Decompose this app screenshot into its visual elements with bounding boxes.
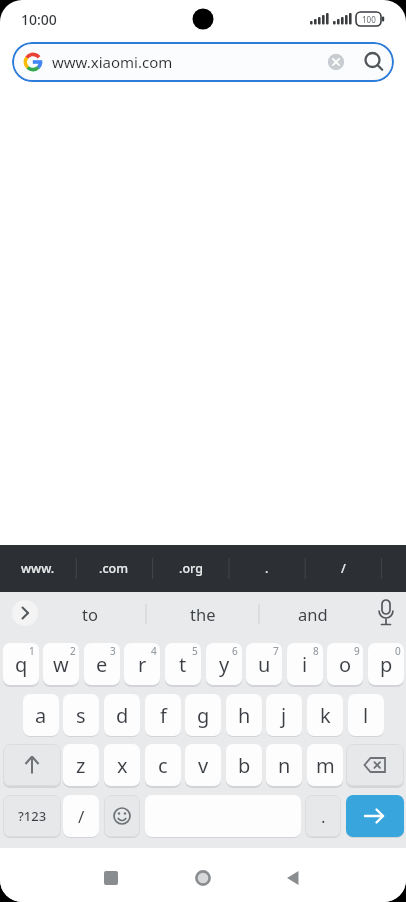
- button[interactable]: .: [305, 795, 341, 837]
- staticText: p: [380, 651, 393, 678]
- staticText: u: [258, 651, 271, 678]
- staticText: e: [96, 651, 108, 678]
- button[interactable]: g: [185, 694, 221, 736]
- button[interactable]: p: [368, 643, 404, 685]
- button[interactable]: q: [3, 643, 39, 685]
- staticText: k: [320, 702, 331, 729]
- button[interactable]: and: [268, 596, 358, 632]
- staticText: 2: [70, 644, 76, 657]
- button[interactable]: c: [145, 744, 181, 786]
- staticText: 7: [273, 644, 279, 657]
- staticText: 3: [110, 644, 116, 657]
- button[interactable]: z: [63, 744, 99, 786]
- button[interactable]: .com: [76, 545, 152, 592]
- button[interactable]: u: [246, 643, 282, 685]
- button[interactable]: [12, 600, 38, 626]
- button[interactable]: b: [226, 744, 262, 786]
- button[interactable]: t: [165, 643, 201, 685]
- staticText: 0: [395, 644, 401, 657]
- staticText: ?123: [18, 807, 47, 825]
- staticText: and: [298, 603, 328, 625]
- staticText: www.: [21, 560, 55, 577]
- button[interactable]: d: [104, 694, 140, 736]
- button[interactable]: e: [84, 643, 120, 685]
- button[interactable]: f: [145, 694, 181, 736]
- staticText: h: [238, 702, 251, 729]
- button[interactable]: o: [327, 643, 363, 685]
- button[interactable]: j: [266, 694, 302, 736]
- staticText: /: [78, 805, 85, 828]
- staticText: v: [198, 752, 209, 779]
- button[interactable]: w: [43, 643, 79, 685]
- button[interactable]: .: [229, 545, 305, 592]
- staticText: the: [190, 603, 216, 625]
- button[interactable]: [3, 744, 61, 786]
- staticText: www.xiaomi.com: [52, 52, 173, 72]
- staticText: /: [341, 560, 346, 577]
- staticText: a: [35, 702, 47, 729]
- button[interactable]: to: [45, 596, 135, 632]
- staticText: .org: [179, 560, 203, 577]
- button[interactable]: [104, 795, 140, 837]
- staticText: o: [339, 651, 352, 678]
- button[interactable]: [346, 744, 404, 786]
- staticText: .: [265, 560, 269, 577]
- button[interactable]: ?123: [3, 795, 61, 837]
- button[interactable]: [189, 864, 217, 892]
- staticText: z: [76, 752, 86, 779]
- staticText: i: [302, 651, 308, 678]
- button[interactable]: y: [206, 643, 242, 685]
- button[interactable]: k: [307, 694, 343, 736]
- button[interactable]: x: [104, 744, 140, 786]
- staticText: r: [138, 651, 147, 678]
- staticText: t: [179, 651, 187, 678]
- staticText: 1: [29, 644, 35, 657]
- staticText: n: [278, 752, 291, 779]
- button[interactable]: v: [185, 744, 221, 786]
- staticText: 4: [151, 644, 157, 657]
- staticText: l: [363, 702, 369, 729]
- button[interactable]: /: [305, 545, 381, 592]
- staticText: g: [197, 702, 210, 729]
- staticText: y: [219, 651, 230, 678]
- button[interactable]: l: [348, 694, 384, 736]
- button[interactable]: i: [287, 643, 323, 685]
- staticText: s: [76, 702, 86, 729]
- staticText: d: [116, 702, 129, 729]
- staticText: w: [53, 651, 69, 678]
- staticText: x: [117, 752, 128, 779]
- staticText: 10:00: [21, 10, 57, 29]
- button[interactable]: www.xiaomi.com: [12, 42, 394, 82]
- button[interactable]: a: [23, 694, 59, 736]
- staticText: b: [238, 752, 251, 779]
- button[interactable]: h: [226, 694, 262, 736]
- staticText: j: [281, 702, 287, 729]
- button[interactable]: /: [63, 795, 99, 837]
- staticText: to: [82, 603, 98, 625]
- button[interactable]: the: [158, 596, 248, 632]
- button[interactable]: m: [307, 744, 343, 786]
- button[interactable]: [279, 864, 307, 892]
- staticText: m: [316, 752, 335, 779]
- staticText: .: [321, 805, 326, 828]
- staticText: c: [158, 752, 168, 779]
- staticText: 6: [232, 644, 238, 657]
- staticText: 5: [192, 644, 198, 657]
- staticText: q: [15, 651, 28, 678]
- button[interactable]: r: [124, 643, 160, 685]
- button[interactable]: [346, 795, 404, 837]
- button[interactable]: www.: [0, 545, 76, 592]
- staticText: 100: [362, 14, 376, 25]
- button[interactable]: s: [63, 694, 99, 736]
- staticText: .com: [99, 560, 129, 577]
- staticText: f: [160, 702, 167, 729]
- button[interactable]: n: [266, 744, 302, 786]
- staticText: 8: [313, 644, 319, 657]
- button[interactable]: [97, 864, 125, 892]
- staticText: 9: [354, 644, 360, 657]
- button[interactable]: .org: [153, 545, 229, 592]
